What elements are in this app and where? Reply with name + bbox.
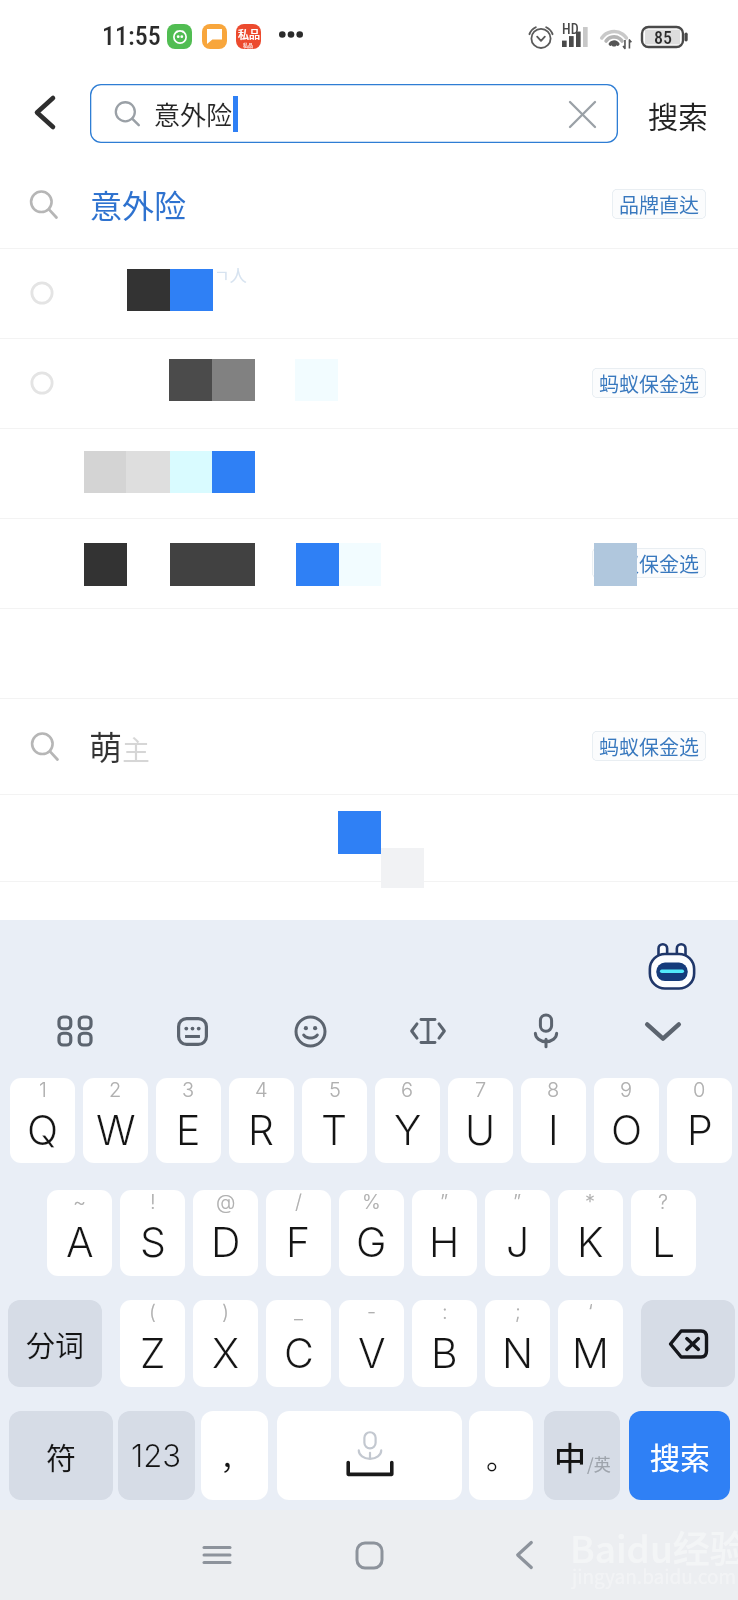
button[interactable]: Space [277, 1411, 462, 1500]
staticText: 6 [401, 1078, 414, 1102]
button[interactable]: / [266, 1190, 331, 1276]
staticText: /英 [587, 1451, 611, 1476]
staticText: ” [440, 1190, 449, 1214]
button[interactable]: Keyboard layout [149, 988, 235, 1074]
button[interactable]: 品牌直达 [612, 189, 706, 219]
staticText: D [211, 1217, 241, 1267]
button[interactable]: 2 [83, 1078, 148, 1163]
button[interactable]: 蚂蚁保金选 [592, 731, 706, 761]
staticText: C [284, 1328, 314, 1378]
button[interactable]: @ [193, 1190, 258, 1276]
staticText: ? [658, 1190, 669, 1214]
staticText: L [652, 1217, 676, 1267]
staticText: U [465, 1105, 496, 1155]
staticText: 123 [131, 1437, 182, 1475]
staticText: 7 [475, 1078, 487, 1102]
button[interactable]: Recents [177, 1510, 257, 1600]
button[interactable]: ㄱ人 [0, 248, 738, 338]
button[interactable]: 。 [469, 1411, 533, 1500]
button[interactable]: ” [412, 1190, 477, 1276]
staticText: X [212, 1328, 240, 1378]
staticText: 蚂蚁保金选 [599, 369, 699, 398]
staticText: 萌 [89, 722, 122, 770]
button[interactable]: ， [201, 1411, 268, 1500]
button[interactable]: 1 [10, 1078, 75, 1163]
button[interactable]: 蚂蚁保金选 [592, 368, 706, 398]
staticText: 私品 [238, 26, 260, 42]
button[interactable]: Voice input [503, 988, 589, 1074]
button[interactable]: 意外险 [90, 84, 618, 143]
button[interactable]: ” [485, 1190, 550, 1276]
button[interactable]: _ [266, 1300, 331, 1387]
button[interactable]: % [339, 1190, 404, 1276]
staticText: E [176, 1105, 201, 1155]
button[interactable]: 0 [667, 1078, 732, 1163]
staticText: 私品 [243, 41, 254, 48]
button[interactable]: 123 [118, 1411, 195, 1500]
button[interactable]: 符 [9, 1411, 113, 1500]
button[interactable]: Home [329, 1510, 409, 1600]
button[interactable] [0, 428, 738, 518]
button[interactable]: 蚂蚁保金选 [0, 518, 738, 608]
staticText: : [442, 1300, 448, 1324]
button[interactable]: 5 [302, 1078, 367, 1163]
staticText: J [506, 1217, 530, 1267]
staticText: R [248, 1105, 275, 1155]
staticText: P [687, 1105, 713, 1155]
button[interactable]: Assistant [644, 940, 700, 996]
button[interactable]: ~ [47, 1190, 112, 1276]
staticText: V [358, 1328, 386, 1378]
staticText: ( [149, 1300, 156, 1324]
staticText: 85 [654, 27, 673, 47]
button[interactable]: Back [7, 74, 83, 150]
button[interactable]: Clear [558, 90, 606, 138]
button[interactable]: 4 [229, 1078, 294, 1163]
button[interactable]: Backspace [641, 1300, 735, 1387]
staticText: 搜索 [648, 93, 708, 136]
button[interactable]: 意外险 [0, 160, 738, 248]
button[interactable]: 萌 [0, 698, 738, 794]
button[interactable]: 8 [521, 1078, 586, 1163]
staticText: S [140, 1217, 166, 1267]
button[interactable]: : [412, 1300, 477, 1387]
button[interactable]: 搜索 [629, 1411, 730, 1500]
button[interactable]: ) [193, 1300, 258, 1387]
staticText: Z [140, 1328, 166, 1378]
staticText: 8 [547, 1078, 560, 1102]
button[interactable]: 7 [448, 1078, 513, 1163]
button[interactable]: 蚂蚁保金选 [592, 548, 706, 578]
button[interactable]: - [339, 1300, 404, 1387]
button[interactable]: 蚂蚁保金选 [0, 338, 738, 428]
button[interactable]: Emoji [267, 988, 353, 1074]
button[interactable]: Hide keyboard [620, 988, 706, 1074]
button[interactable]: 分词 [8, 1300, 102, 1387]
button[interactable]: 9 [594, 1078, 659, 1163]
staticText: 分词 [26, 1323, 85, 1365]
button[interactable]: Apps [32, 988, 118, 1074]
staticText: * [585, 1190, 596, 1214]
staticText: 4 [255, 1078, 268, 1102]
staticText: 。 [486, 1434, 516, 1477]
staticText: F [286, 1217, 311, 1267]
staticText: 主 [122, 729, 151, 770]
button[interactable]: 3 [156, 1078, 221, 1163]
staticText: % [362, 1190, 381, 1214]
button[interactable]: Edit text [385, 988, 471, 1074]
button[interactable]: ; [485, 1300, 550, 1387]
button[interactable]: Back [484, 1510, 564, 1600]
button[interactable]: ( [120, 1300, 185, 1387]
button[interactable]: ! [120, 1190, 185, 1276]
button[interactable]: ? [631, 1190, 696, 1276]
staticText: O [611, 1105, 643, 1155]
staticText: 品牌直达 [619, 190, 699, 219]
button[interactable]: 搜索 [626, 70, 730, 158]
staticText: 中 [554, 1433, 587, 1479]
staticText: _ [294, 1300, 303, 1324]
staticText: ， [220, 1434, 250, 1477]
button[interactable]: 中 [544, 1411, 620, 1500]
button[interactable]: ‘ [558, 1300, 623, 1387]
staticText: T [321, 1105, 348, 1155]
button[interactable]: * [558, 1190, 623, 1276]
button[interactable]: 6 [375, 1078, 440, 1163]
